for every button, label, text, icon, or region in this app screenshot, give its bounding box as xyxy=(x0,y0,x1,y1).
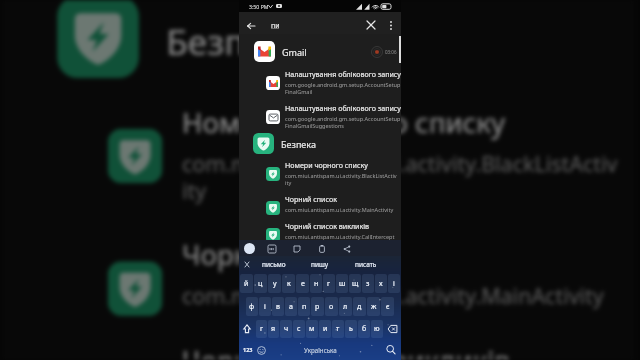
button[interactable]: Налаштування облікового запису xyxy=(239,69,401,99)
button[interactable]: й xyxy=(240,274,253,293)
staticText: ц xyxy=(258,279,263,289)
staticText: пишу xyxy=(311,260,329,269)
button[interactable]: Back xyxy=(243,18,259,34)
button[interactable]: Clipboard xyxy=(316,243,327,254)
button[interactable]: д xyxy=(353,297,366,316)
button[interactable]: Gmail xyxy=(239,41,401,62)
button[interactable]: ж xyxy=(367,297,380,316)
button[interactable]: н xyxy=(310,274,322,293)
staticText: и xyxy=(323,324,328,334)
button[interactable]: Чорний список xyxy=(239,194,401,224)
staticText: й xyxy=(244,279,249,289)
staticText: Безпека xyxy=(166,16,303,62)
button[interactable]: а xyxy=(285,297,297,316)
button[interactable]: More options xyxy=(383,17,399,33)
staticText: Gmail xyxy=(282,46,307,58)
button[interactable]: ю xyxy=(371,320,383,338)
button[interactable]: о xyxy=(325,297,338,316)
button[interactable]: є xyxy=(381,297,394,316)
staticText: н xyxy=(314,279,319,289)
button[interactable]: с xyxy=(293,320,305,338)
staticText: com.google.android.gm.setup.AccountSetup xyxy=(285,81,401,88)
staticText: Чорний список викликів xyxy=(182,339,513,360)
staticText: о xyxy=(329,302,334,312)
button[interactable]: я xyxy=(268,320,279,338)
button[interactable]: ч xyxy=(280,320,292,338)
staticText: і xyxy=(264,302,266,312)
button[interactable]: в xyxy=(272,297,284,316)
staticText: com.miui.antispam.ui.activity.MainActivi… xyxy=(182,281,607,308)
button[interactable]: у xyxy=(268,274,281,293)
button[interactable]: 123 xyxy=(242,345,254,354)
button[interactable]: х xyxy=(375,274,387,293)
button[interactable]: е xyxy=(296,274,309,293)
button[interactable]: м xyxy=(306,320,318,338)
staticText: Номери чорного списку xyxy=(285,160,368,170)
button[interactable]: Stickers xyxy=(291,243,302,254)
button[interactable]: к xyxy=(282,274,295,293)
staticText: 03:06 xyxy=(385,49,397,55)
staticText: в xyxy=(276,302,280,312)
button[interactable]: и xyxy=(319,320,331,338)
button[interactable]: Search xyxy=(385,344,397,356)
button[interactable]: р xyxy=(311,297,324,316)
button[interactable]: Google xyxy=(244,243,255,254)
button[interactable]: GIF xyxy=(266,243,277,254)
staticText: у xyxy=(273,279,277,289)
staticText: com.miui.antispam.ui.activity.CallInterc… xyxy=(285,233,395,240)
staticText: а xyxy=(289,302,293,312)
button[interactable]: Номери чорного списку xyxy=(239,160,401,190)
button[interactable]: і xyxy=(259,297,271,316)
button[interactable]: ф xyxy=(246,297,258,316)
staticText: пи xyxy=(271,21,280,31)
staticText: і xyxy=(393,279,395,289)
button[interactable]: Share xyxy=(341,243,352,254)
button[interactable]: Номери чорного списку xyxy=(2,101,634,218)
staticText: я xyxy=(271,324,276,334)
button[interactable]: г xyxy=(323,274,335,293)
button[interactable]: п xyxy=(298,297,310,316)
staticText: Налаштування облікового запису xyxy=(285,69,401,79)
button[interactable]: Clear search xyxy=(363,17,379,33)
staticText: ж xyxy=(371,302,377,312)
staticText: т xyxy=(336,324,340,334)
staticText: м xyxy=(309,324,315,334)
button[interactable]: ц xyxy=(254,274,267,293)
button[interactable]: Безпека xyxy=(239,133,401,154)
button[interactable]: Expand suggestions xyxy=(242,260,251,269)
button[interactable]: з xyxy=(362,274,374,293)
staticText: ш xyxy=(339,279,346,289)
staticText: р xyxy=(315,302,320,312)
button[interactable]: Shift xyxy=(239,320,255,338)
staticText: г xyxy=(260,324,264,334)
button[interactable]: Чорний список xyxy=(2,234,634,351)
button[interactable]: Чорний список викликів xyxy=(239,221,401,240)
button[interactable]: Налаштування облікового запису xyxy=(239,103,401,133)
button[interactable]: і xyxy=(388,274,400,293)
button[interactable]: Backspace xyxy=(384,320,401,338)
button[interactable]: л xyxy=(339,297,352,316)
staticText: є xyxy=(386,302,390,312)
button[interactable]: Emoji xyxy=(257,346,266,355)
staticText: к xyxy=(287,279,291,289)
staticText: щ xyxy=(352,279,359,289)
staticText: Чорний список викликів xyxy=(285,221,370,231)
staticText: ч xyxy=(284,324,289,334)
staticText: г xyxy=(327,279,331,289)
button[interactable]: ь xyxy=(345,320,357,338)
button[interactable]: т xyxy=(332,320,344,338)
button[interactable]: писать xyxy=(343,256,389,272)
staticText: com.miui.antispam.ui.activity.BlackListA… xyxy=(182,148,619,175)
staticText: com.google.android.gm.setup.AccountSetup xyxy=(285,115,401,122)
button[interactable]: ш xyxy=(336,274,348,293)
button[interactable]: Безпека xyxy=(2,0,634,78)
staticText: 123 xyxy=(243,346,253,353)
staticText: ity xyxy=(182,175,209,203)
button[interactable]: б xyxy=(358,320,370,338)
button[interactable]: г xyxy=(256,320,267,338)
staticText: com.miui.antispam.ui.activity.MainActivi… xyxy=(285,206,394,213)
button[interactable]: щ xyxy=(349,274,361,293)
button[interactable]: Чорний список викликів xyxy=(2,339,634,360)
button[interactable]: письмо xyxy=(251,256,297,272)
button[interactable]: пишу xyxy=(297,256,343,272)
